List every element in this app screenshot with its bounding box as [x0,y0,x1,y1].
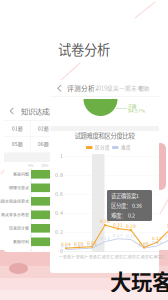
staticText: 一单选3 [85,254,99,259]
staticText: 素图可利 [13,239,29,244]
staticText: 一单选1 [59,254,73,259]
staticText: 帮助 [139,84,149,92]
staticText: 0.13 [100,236,110,241]
staticText: 0.36 [100,219,110,224]
staticText: 0.6 [55,191,63,197]
staticText: 0.03 [74,243,84,248]
staticText: 02题 [38,125,49,132]
staticText: 0.04 [139,242,149,247]
staticText: 饮液定计算 [9,225,29,231]
staticText: 二填空3 [124,254,138,259]
staticText: 试卷分析 [58,39,110,59]
staticText: 事政问题 [13,171,29,177]
staticText: 0.05 [74,241,84,246]
staticText: 1 [60,153,63,159]
staticText: 0.04 [87,242,97,247]
staticText: 难度 [121,144,131,150]
staticText: 0.16 [165,234,168,239]
staticText: 二填空2 [111,254,125,259]
staticText: 15% [41,163,49,168]
staticText: 0.31 [113,222,123,227]
staticText: 试题难度和区分度比较 [74,131,134,140]
staticText: 0 [60,248,63,254]
staticText: 大玩客 [110,266,168,296]
staticText: 01题 [12,125,23,132]
staticText: 三解答1 [150,254,164,259]
staticText: 正确 [128,103,136,110]
staticText: 94.57% [128,108,145,113]
staticText: 0.06 [87,240,97,245]
staticText: 2019级高一期末考 [95,84,143,92]
staticText: 0.3 [166,223,168,228]
staticText: 难度： 0.2 [111,211,135,219]
staticText: 0.07 [152,240,162,245]
staticText: 05题 [12,141,23,147]
staticText: 简式非多分布单 [1,212,29,217]
staticText: 二填空1 [98,254,112,259]
staticText: 0.05 [139,241,149,246]
staticText: 二填空4 [137,254,151,259]
staticText: 06题 [38,141,49,147]
staticText: 知识达成度 [21,106,56,116]
staticText: 0.04 [61,242,71,247]
staticText: 评测分析 - [67,83,98,93]
staticText: 0.12 [152,236,162,241]
staticText: 区分度： 0.36 [111,202,142,209]
staticText: 0.16 [126,234,136,239]
staticText: 0.2 [55,229,63,235]
staticText: 物理与单式 [9,185,29,190]
staticText: 0.02 [61,244,71,249]
staticText: 0.29 [126,224,136,229]
staticText: 该正确答案1 [111,192,139,200]
staticText: 物质图文和途径单式 [0,198,29,204]
staticText: 一单选2 [72,254,86,259]
staticText: 0.17 [113,233,123,238]
staticText: 区分度 [95,144,110,150]
staticText: 0.8 [55,172,63,178]
staticText: 0.4 [55,210,63,216]
staticText: 5% [28,163,34,168]
